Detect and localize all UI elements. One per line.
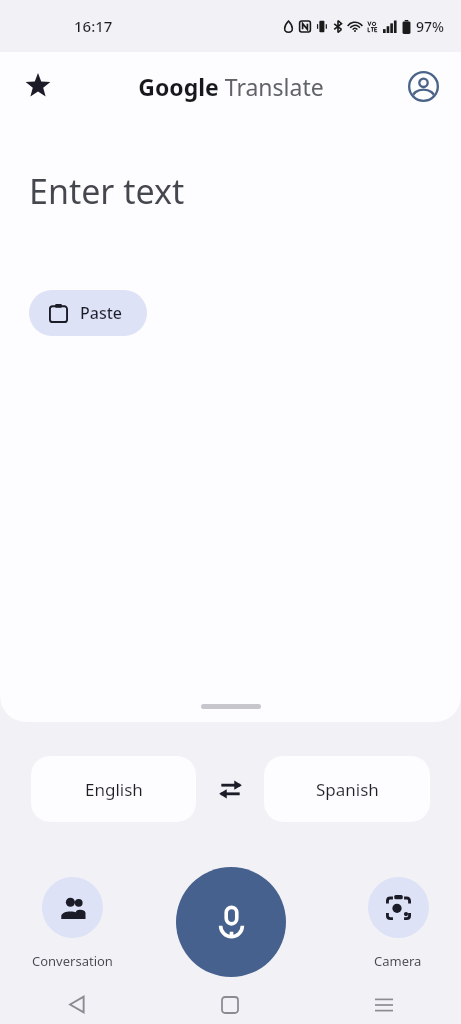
button[interactable]: Paste: [29, 290, 147, 336]
staticText: 97%: [416, 17, 444, 36]
button[interactable]: Enter text: [0, 120, 461, 722]
staticText: Enter text: [29, 168, 185, 214]
button[interactable]: Spanish: [264, 756, 430, 822]
staticText: English: [85, 778, 143, 801]
button[interactable]: Conversation: [24, 877, 121, 970]
button[interactable]: Voice input: [176, 867, 286, 977]
button[interactable]: Account: [399, 62, 447, 110]
staticText: Spanish: [316, 778, 379, 801]
button[interactable]: English: [31, 756, 196, 822]
button[interactable]: Saved: [14, 62, 62, 110]
staticText: Google Translate: [138, 71, 324, 102]
button[interactable]: Camera: [358, 877, 438, 970]
button[interactable]: Swap languages: [196, 756, 264, 822]
button[interactable]: Recent apps: [307, 985, 461, 1024]
button[interactable]: Home: [153, 985, 307, 1024]
button[interactable]: Back: [0, 985, 153, 1024]
staticText: Camera: [374, 952, 422, 970]
staticText: Conversation: [32, 952, 113, 970]
staticText: 16:17: [74, 16, 113, 36]
staticText: Paste: [80, 302, 123, 324]
